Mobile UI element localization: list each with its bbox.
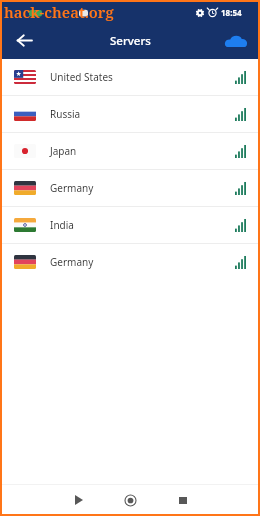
button[interactable]: Germany [2,170,258,206]
button[interactable]: Back [68,489,90,511]
staticText: Germany [50,255,94,269]
staticText: 18:54 [221,7,242,18]
button[interactable]: Russia [2,96,258,132]
staticText: Russia [50,107,81,121]
button[interactable]: Recent apps [172,489,194,511]
staticText: Servers [110,33,151,49]
staticText: India [50,218,74,232]
button[interactable]: Cloud connect [225,34,247,48]
button[interactable]: United States [2,59,258,95]
staticText: Japan [50,144,77,158]
button[interactable]: Japan [2,133,258,169]
staticText: United States [50,70,113,84]
button[interactable]: Back [16,34,33,47]
staticText: Germany [50,181,94,195]
button[interactable]: Home [119,489,141,511]
button[interactable]: Germany [2,244,258,280]
button[interactable]: India [2,207,258,243]
staticText: hack-cheat.org [4,2,114,22]
